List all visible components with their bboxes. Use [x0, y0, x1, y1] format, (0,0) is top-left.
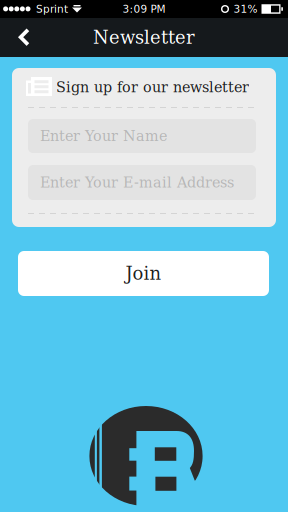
staticText: Join	[125, 263, 161, 284]
button[interactable]: Back	[4, 18, 44, 57]
button[interactable]: Enter Your Name	[28, 119, 256, 153]
staticText: Enter Your Name	[40, 128, 167, 144]
staticText: 31%	[233, 3, 257, 15]
staticText: Enter Your E-mail Address	[40, 174, 234, 191]
button[interactable]: Enter Your E-mail Address	[28, 165, 256, 200]
staticText: Sign up for our newsletter	[56, 79, 249, 96]
staticText: 3:09 PM	[122, 3, 165, 15]
button[interactable]: Join	[18, 251, 269, 296]
staticText: Newsletter	[93, 27, 195, 48]
staticText: Sprint	[36, 3, 68, 15]
